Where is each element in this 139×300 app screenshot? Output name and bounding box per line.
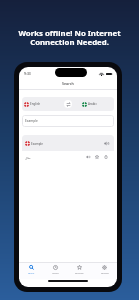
staticText: Arabic	[88, 102, 97, 106]
button[interactable]: Arabic	[81, 98, 98, 110]
staticText: 9:33	[24, 71, 31, 76]
button[interactable]: Example	[22, 115, 114, 127]
staticText: Settings	[101, 272, 109, 275]
button[interactable]: English	[23, 98, 42, 110]
staticText: Example	[31, 142, 44, 146]
button[interactable]: Favorite	[95, 155, 99, 159]
staticText: English	[30, 102, 41, 106]
staticText: Example	[25, 119, 38, 123]
button[interactable]: Copy	[104, 155, 108, 159]
button[interactable]: Search	[19, 263, 43, 279]
staticText: Search	[62, 81, 74, 86]
button[interactable]: Settings	[92, 263, 117, 279]
button[interactable]: Play audio	[104, 141, 109, 146]
staticText: Favorites	[75, 272, 84, 275]
staticText: Search	[28, 272, 35, 275]
staticText: مثال	[25, 156, 31, 159]
staticText: History	[52, 272, 59, 275]
button[interactable]: Play audio	[86, 155, 90, 159]
button[interactable]: Swap languages	[64, 100, 72, 108]
button[interactable]: Favorites	[67, 263, 92, 279]
button[interactable]: History	[43, 263, 67, 279]
staticText: Works offline! No Internet Connection Ne…	[0, 28, 139, 47]
